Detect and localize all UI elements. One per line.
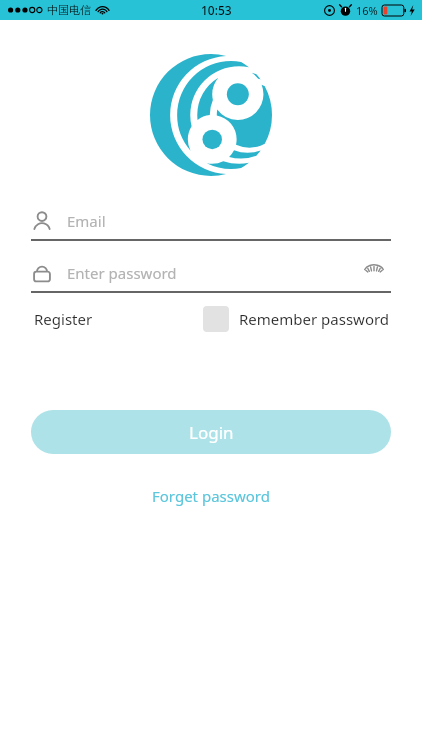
staticText: Enter password xyxy=(67,263,357,283)
staticText: 中国电信 xyxy=(47,3,91,17)
staticText: Email xyxy=(67,211,391,231)
staticText: 16% xyxy=(356,3,378,18)
staticText: 10:53 xyxy=(201,2,232,18)
staticText: Login xyxy=(189,421,234,444)
button[interactable]: Login xyxy=(31,410,391,454)
button[interactable]: Email xyxy=(31,203,391,239)
button[interactable]: Register xyxy=(32,305,95,333)
staticText: Forget password xyxy=(152,486,270,506)
button[interactable]: Forget password xyxy=(140,482,282,510)
staticText: Register xyxy=(34,309,93,329)
button[interactable]: Show password xyxy=(357,256,391,290)
button[interactable]: Enter password xyxy=(31,255,391,291)
button[interactable]: Remember password xyxy=(203,306,390,332)
staticText: Remember password xyxy=(239,309,390,329)
